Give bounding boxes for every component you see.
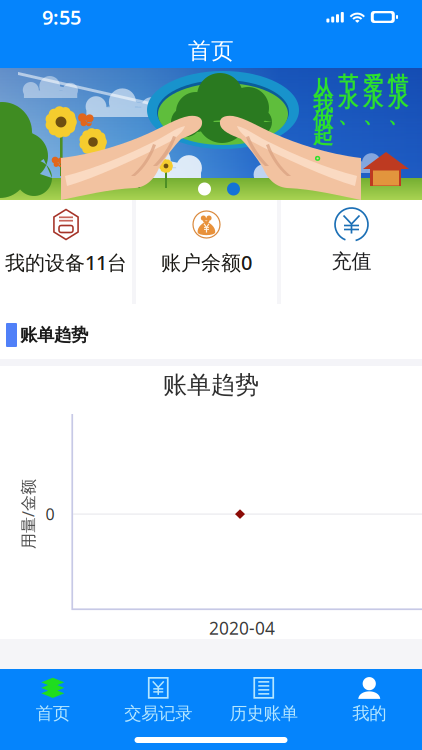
staticText: 2020-04 bbox=[209, 616, 275, 639]
staticText: 节 bbox=[338, 72, 358, 96]
staticText: 做 bbox=[313, 108, 333, 132]
staticText: 交易记录 bbox=[124, 703, 192, 724]
button[interactable]: 我的设备11台 bbox=[0, 200, 132, 304]
button[interactable]: 我的 bbox=[316, 665, 422, 750]
button[interactable]: 充值 bbox=[281, 200, 422, 304]
staticText: 水 bbox=[338, 88, 358, 112]
staticText: 爱 bbox=[363, 72, 383, 96]
button[interactable]: 历史账单 bbox=[211, 665, 316, 750]
staticText: 我 bbox=[313, 92, 333, 116]
staticText: 账单趋势 bbox=[20, 324, 88, 346]
staticText: 首页 bbox=[188, 37, 234, 65]
staticText: 水 bbox=[388, 88, 408, 112]
staticText: 账户余额0 bbox=[161, 249, 252, 276]
staticText: 首页 bbox=[36, 703, 70, 724]
staticText: 起 bbox=[313, 124, 333, 148]
staticText: 充值 bbox=[331, 249, 371, 274]
button[interactable]: 账户余额0 bbox=[136, 200, 277, 304]
staticText: 账单趋势 bbox=[163, 370, 259, 400]
button[interactable]: 首页 bbox=[0, 34, 422, 68]
staticText: 、 bbox=[338, 104, 358, 128]
staticText: 惜 bbox=[388, 72, 408, 96]
staticText: 我的设备11台 bbox=[5, 249, 127, 276]
button[interactable]: 交易记录 bbox=[105, 665, 211, 750]
staticText: 水 bbox=[363, 88, 383, 112]
staticText: 历史账单 bbox=[230, 703, 298, 724]
button[interactable]: 首页 bbox=[0, 665, 105, 750]
staticText: 用量/金额 bbox=[0, 503, 63, 525]
staticText: 从 bbox=[313, 76, 333, 100]
staticText: 9:55 bbox=[42, 4, 81, 30]
staticText: 。 bbox=[313, 140, 333, 164]
staticText: 、 bbox=[388, 104, 408, 128]
staticText: 我的 bbox=[352, 703, 386, 724]
staticText: 、 bbox=[363, 104, 383, 128]
staticText: 0 bbox=[45, 503, 54, 525]
